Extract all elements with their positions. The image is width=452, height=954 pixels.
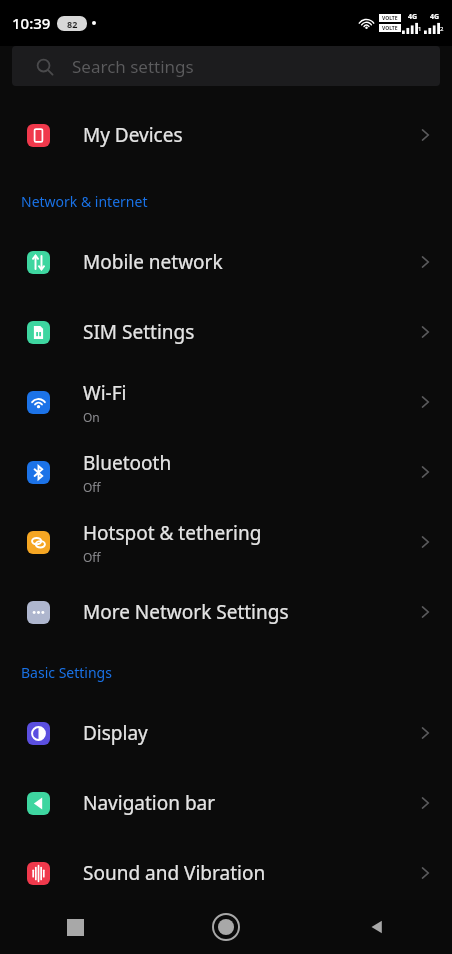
staticText: Bluetooth [83,450,172,476]
staticText: 4G [408,12,418,22]
button[interactable]: My Devices [0,100,452,170]
button[interactable]: SIM Settings [0,297,452,367]
staticText: More Network Settings [83,599,289,625]
staticText: 4G [430,12,440,22]
staticText: VOLTE [382,25,398,32]
staticText: Display [83,720,148,746]
staticText: Wi-Fi [83,380,127,406]
staticText: 2 [440,25,444,33]
button[interactable]: More Network Settings [0,577,452,647]
staticText: Off [83,479,101,495]
button[interactable]: Display [0,698,452,768]
staticText: Navigation bar [83,790,216,816]
button[interactable]: Back [301,900,452,954]
staticText: Network & internet [21,192,148,211]
staticText: 1 [418,25,422,33]
button[interactable]: Bluetooth [0,437,452,507]
staticText: Search settings [72,55,194,78]
staticText: Hotspot & tethering [83,520,262,546]
button[interactable]: Wi-Fi [0,367,452,437]
staticText: On [83,409,100,425]
button[interactable]: Navigation bar [0,768,452,838]
button[interactable]: Search settings [12,46,440,86]
button[interactable]: Sound and Vibration [0,838,452,908]
button[interactable]: Recent apps [0,900,150,954]
staticText: 10:39 [12,13,51,33]
button[interactable]: Hotspot & tethering [0,507,452,577]
staticText: My Devices [83,122,183,148]
staticText: Sound and Vibration [83,860,266,886]
staticText: Off [83,549,101,565]
button[interactable]: Mobile network [0,227,452,297]
staticText: 82 [67,18,78,30]
staticText: VOLTE [382,15,398,22]
staticText: SIM Settings [83,319,195,345]
staticText: Mobile network [83,249,223,275]
button[interactable]: Home [150,900,301,954]
staticText: Basic Settings [21,663,112,682]
